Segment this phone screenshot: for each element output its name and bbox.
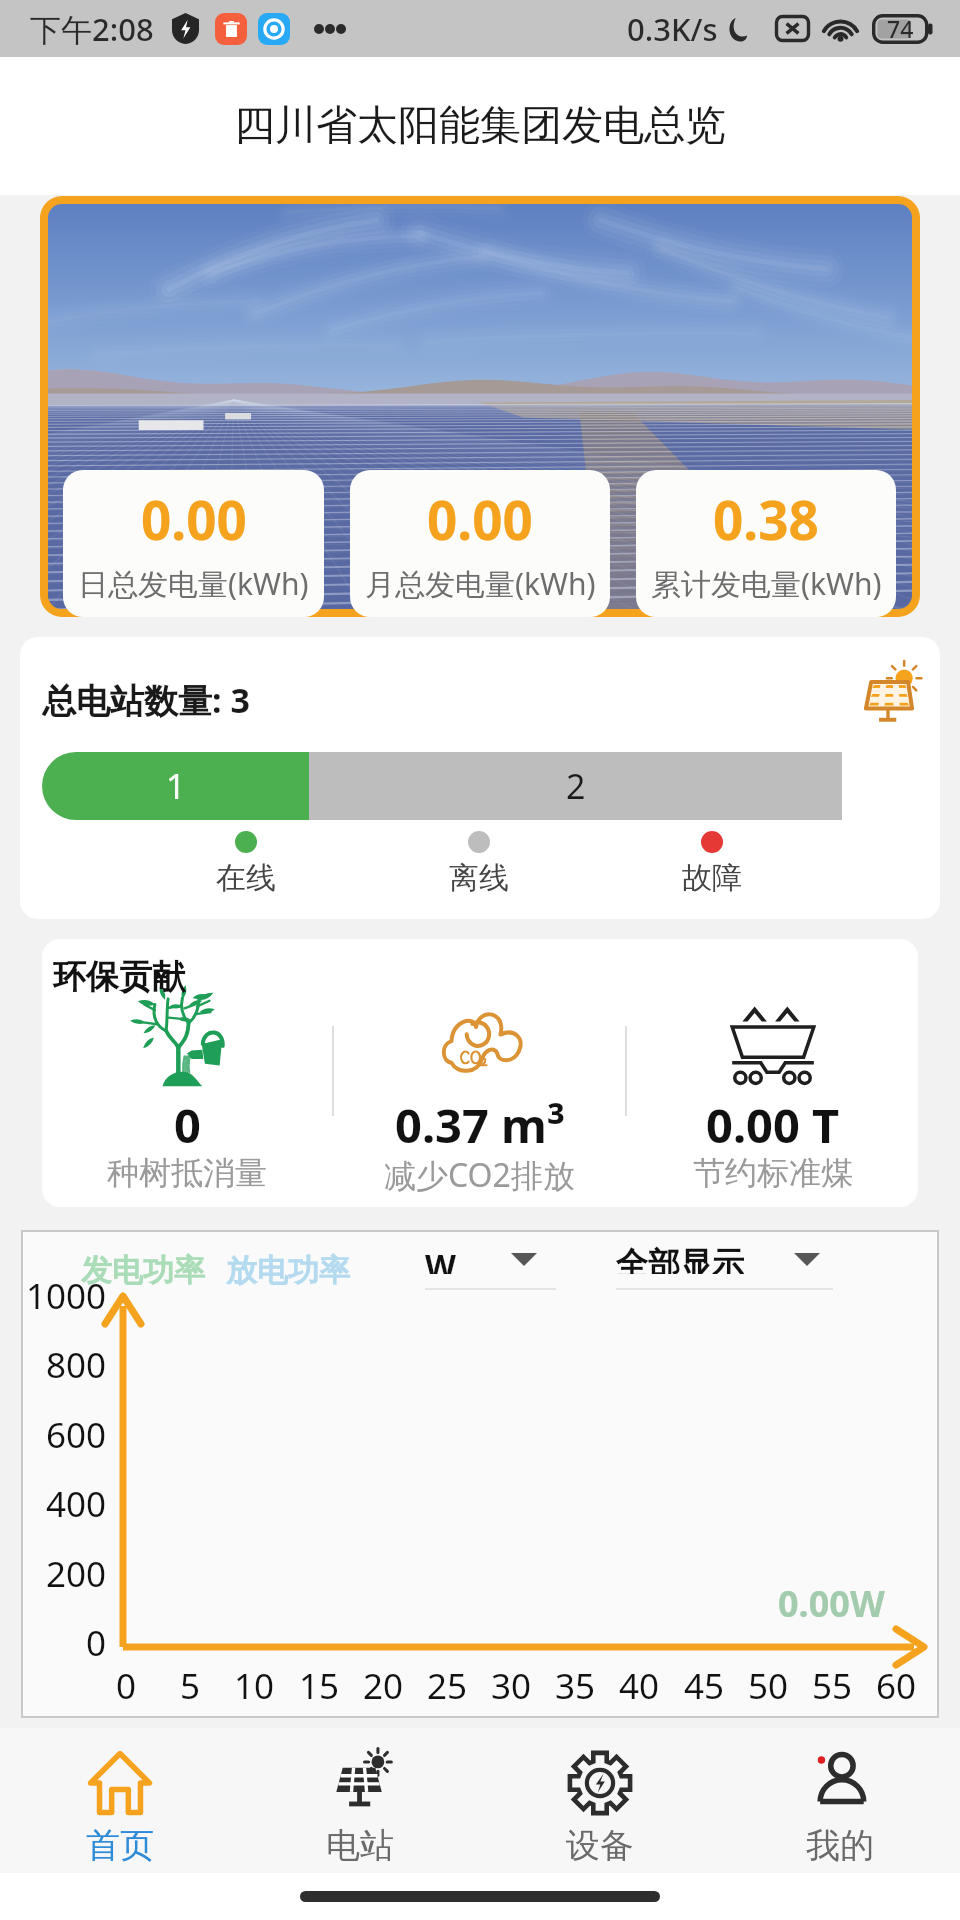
staticText: 在线	[216, 859, 276, 897]
staticText: 放电功率	[226, 1251, 350, 1290]
button[interactable]: 在线	[130, 831, 362, 897]
button[interactable]: 0	[42, 939, 332, 1207]
staticText: 20	[353, 1662, 413, 1710]
staticText: 电站	[326, 1824, 394, 1867]
staticText: 45	[674, 1662, 734, 1710]
staticText: 25	[417, 1662, 477, 1710]
staticText: 日总发电量(kWh)	[78, 563, 309, 604]
staticText: 减少CO2排放	[384, 1153, 575, 1197]
staticText: 35	[545, 1662, 605, 1710]
staticText: 30	[481, 1662, 541, 1710]
button[interactable]: 我的	[720, 1728, 960, 1873]
staticText: 环保贡献	[53, 956, 185, 998]
staticText: 累计发电量(kWh)	[651, 563, 882, 604]
staticText: 发电功率	[81, 1251, 205, 1290]
button[interactable]: 离线	[362, 831, 595, 897]
staticText: 月总发电量(kWh)	[365, 563, 596, 604]
staticText: 全部显示	[616, 1244, 744, 1274]
staticText: 0	[174, 1093, 201, 1157]
button[interactable]: 0.37 m³	[334, 939, 625, 1207]
staticText: 0	[96, 1662, 156, 1710]
staticText: 600	[21, 1411, 106, 1459]
staticText: 5	[160, 1662, 220, 1710]
button[interactable]: 0.00	[350, 470, 610, 617]
button[interactable]: 故障	[595, 831, 828, 897]
staticText: 首页	[86, 1824, 154, 1867]
button[interactable]: 总电站数量: 3	[20, 637, 940, 919]
button[interactable]: 设备	[480, 1728, 720, 1873]
staticText: 400	[21, 1480, 106, 1528]
staticText: 0.00	[427, 483, 533, 555]
staticText: 0.00 T	[706, 1093, 840, 1157]
staticText: 200	[21, 1550, 106, 1598]
staticText: 我的	[806, 1824, 874, 1867]
button[interactable]: 0.00	[40, 196, 920, 617]
staticText: 1000	[21, 1272, 106, 1320]
staticText: 0.38	[713, 483, 819, 555]
staticText: 0.3K/s	[627, 8, 718, 50]
button[interactable]: 首页	[0, 1728, 240, 1873]
staticText: 四川省太阳能集团发电总览	[234, 100, 726, 152]
staticText: 10	[224, 1662, 284, 1710]
staticText: 故障	[682, 859, 742, 897]
staticText: 0.37 m³	[395, 1093, 565, 1157]
button[interactable]: 全部显示	[616, 1244, 833, 1290]
staticText: 种树抵消量	[107, 1153, 267, 1193]
staticText: 1	[166, 763, 186, 809]
staticText: 0.00W	[778, 1579, 885, 1628]
staticText: 2	[566, 763, 586, 809]
staticText: W	[425, 1244, 456, 1274]
staticText: 0	[21, 1619, 106, 1667]
staticText: 74	[887, 13, 914, 44]
staticText: 40	[609, 1662, 669, 1710]
button[interactable]: W	[425, 1244, 556, 1290]
button[interactable]: 0.00 T	[627, 939, 918, 1207]
staticText: 节约标准煤	[693, 1153, 853, 1193]
staticText: 15	[289, 1662, 349, 1710]
staticText: 800	[21, 1341, 106, 1389]
button[interactable]: 电站	[240, 1728, 480, 1873]
button[interactable]: 0.00	[63, 470, 324, 617]
staticText: 下午2:08	[30, 8, 154, 50]
staticText: 50	[738, 1662, 798, 1710]
staticText: 0.00	[141, 483, 247, 555]
staticText: 55	[802, 1662, 862, 1710]
button[interactable]: 0	[42, 939, 918, 1207]
staticText: 离线	[449, 859, 509, 897]
staticText: 总电站数量: 3	[42, 677, 250, 723]
staticText: 60	[866, 1662, 926, 1710]
staticText: 设备	[566, 1824, 634, 1867]
button[interactable]: 0.38	[636, 470, 896, 617]
